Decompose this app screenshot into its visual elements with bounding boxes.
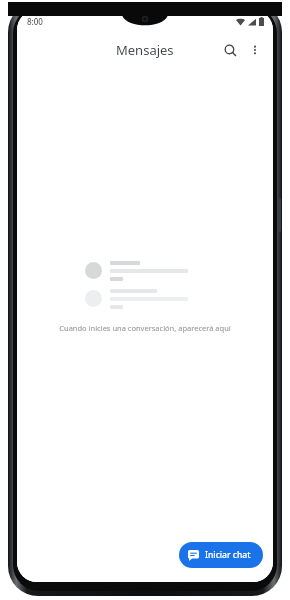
staticText: Mensajes	[116, 41, 174, 59]
staticText: Cuando inicies una conversación, aparece…	[59, 323, 231, 333]
button[interactable]: Iniciar chat	[179, 542, 263, 568]
staticText: 8:00	[27, 16, 43, 27]
button[interactable]: Buscar	[217, 37, 243, 63]
staticText: Iniciar chat	[205, 549, 251, 561]
button[interactable]: Más opciones	[243, 38, 267, 62]
